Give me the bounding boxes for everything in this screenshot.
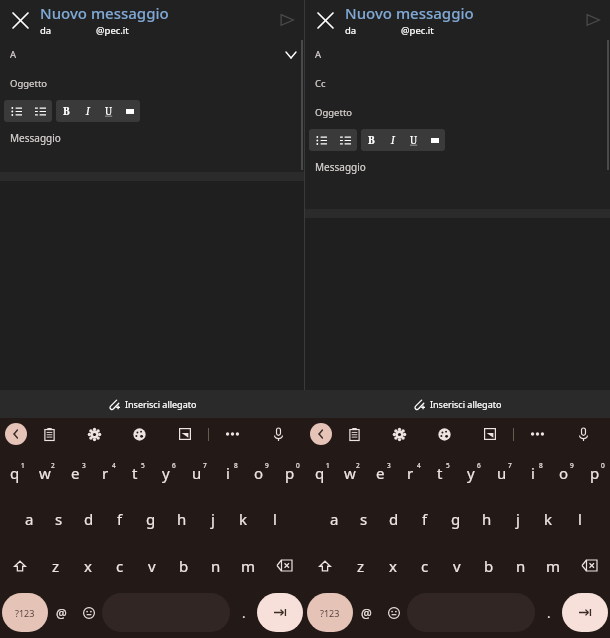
button[interactable]: i — [517, 450, 548, 496]
button[interactable]: v — [441, 542, 473, 589]
button[interactable]: Appunti — [27, 418, 72, 450]
button[interactable]: s — [44, 496, 74, 542]
button[interactable]: ?123 — [307, 593, 353, 632]
button[interactable]: r — [395, 450, 425, 496]
button[interactable]: u — [486, 450, 517, 496]
button[interactable]: Impostazioni — [72, 418, 117, 450]
button[interactable]: p — [579, 450, 610, 496]
button[interactable]: k — [533, 496, 564, 542]
button[interactable]: I — [77, 100, 98, 122]
button[interactable]: q — [0, 450, 30, 496]
button[interactable]: A — [305, 40, 610, 69]
button[interactable]: t — [425, 450, 455, 496]
button[interactable]: h — [166, 496, 197, 542]
button[interactable]: Evidenzia — [424, 129, 445, 151]
button[interactable]: l — [564, 496, 595, 542]
button[interactable]: Altro — [514, 418, 560, 450]
button[interactable]: Temi — [117, 418, 162, 450]
button[interactable]: m — [537, 542, 569, 589]
button[interactable]: A — [0, 40, 304, 69]
button[interactable]: v — [136, 542, 168, 589]
button[interactable]: j — [197, 496, 228, 542]
button[interactable]: c — [104, 542, 136, 589]
button[interactable]: Indietro — [310, 423, 332, 445]
button[interactable]: m — [232, 542, 264, 589]
button[interactable]: Evidenzia — [119, 100, 140, 122]
button[interactable]: Punto — [230, 593, 257, 632]
button[interactable]: Maiuscole — [305, 542, 345, 589]
button[interactable]: Temi — [422, 418, 467, 450]
button[interactable]: e — [365, 450, 395, 496]
button[interactable]: I — [382, 129, 403, 151]
button[interactable]: a — [14, 496, 44, 542]
button[interactable]: Spazio — [102, 593, 230, 632]
button[interactable]: Elenco — [309, 129, 333, 151]
button[interactable]: Inserisci allegato — [407, 395, 508, 413]
button[interactable]: o — [548, 450, 579, 496]
button[interactable]: i — [212, 450, 243, 496]
button[interactable]: z — [40, 542, 72, 589]
button[interactable]: Indietro — [5, 423, 27, 445]
button[interactable]: l — [259, 496, 290, 542]
button[interactable]: Elenco — [4, 100, 28, 122]
button[interactable]: Chiocciola — [353, 593, 380, 632]
button[interactable]: a — [319, 496, 349, 542]
button[interactable]: n — [505, 542, 537, 589]
button[interactable]: Oggetto — [305, 98, 610, 127]
button[interactable]: Invia — [270, 3, 304, 37]
button[interactable]: h — [471, 496, 502, 542]
button[interactable]: Invio — [257, 593, 303, 632]
button[interactable]: Invio — [562, 593, 608, 632]
button[interactable]: c — [409, 542, 441, 589]
button[interactable]: x — [72, 542, 104, 589]
button[interactable]: Cancella — [569, 542, 610, 589]
button[interactable]: U — [403, 129, 424, 151]
button[interactable]: Adesivi — [162, 418, 208, 450]
button[interactable]: k — [228, 496, 259, 542]
button[interactable]: Elenco — [309, 129, 357, 151]
button[interactable]: x — [377, 542, 409, 589]
button[interactable]: d — [379, 496, 409, 542]
button[interactable]: Elenco — [4, 100, 52, 122]
button[interactable]: Chiudi — [305, 0, 345, 40]
button[interactable]: Elenco numerato — [28, 100, 52, 122]
button[interactable]: Impostazioni — [377, 418, 422, 450]
button[interactable]: e — [60, 450, 90, 496]
button[interactable]: b — [168, 542, 200, 589]
button[interactable]: Appunti — [332, 418, 377, 450]
button[interactable]: z — [345, 542, 377, 589]
button[interactable]: Emoji — [380, 593, 407, 632]
button[interactable]: Cc — [305, 69, 610, 98]
button[interactable]: Emoji — [75, 593, 102, 632]
button[interactable]: Maiuscole — [0, 542, 40, 589]
button[interactable]: r — [90, 450, 120, 496]
button[interactable]: y — [455, 450, 486, 496]
button[interactable]: Cancella — [264, 542, 305, 589]
button[interactable]: Oggetto — [0, 69, 304, 98]
button[interactable]: g — [135, 496, 166, 542]
button[interactable]: Elenco numerato — [333, 129, 357, 151]
button[interactable]: B — [361, 129, 382, 151]
button[interactable]: j — [502, 496, 533, 542]
button[interactable]: Voce — [255, 418, 301, 450]
button[interactable]: B — [56, 100, 77, 122]
button[interactable]: b — [473, 542, 505, 589]
button[interactable]: o — [243, 450, 274, 496]
button[interactable]: ?123 — [2, 593, 48, 632]
button[interactable]: Punto — [535, 593, 562, 632]
button[interactable]: g — [440, 496, 471, 542]
button[interactable]: y — [150, 450, 181, 496]
button[interactable]: Chiudi — [0, 0, 40, 40]
button[interactable]: Inserisci allegato — [102, 395, 203, 413]
button[interactable]: w — [335, 450, 365, 496]
button[interactable]: q — [305, 450, 335, 496]
button[interactable]: s — [349, 496, 379, 542]
button[interactable]: Spazio — [407, 593, 535, 632]
button[interactable]: Altro — [209, 418, 255, 450]
button[interactable]: t — [120, 450, 150, 496]
button[interactable]: n — [200, 542, 232, 589]
button[interactable]: Chiocciola — [48, 593, 75, 632]
button[interactable]: d — [74, 496, 104, 542]
button[interactable]: Adesivi — [467, 418, 513, 450]
button[interactable]: p — [274, 450, 305, 496]
